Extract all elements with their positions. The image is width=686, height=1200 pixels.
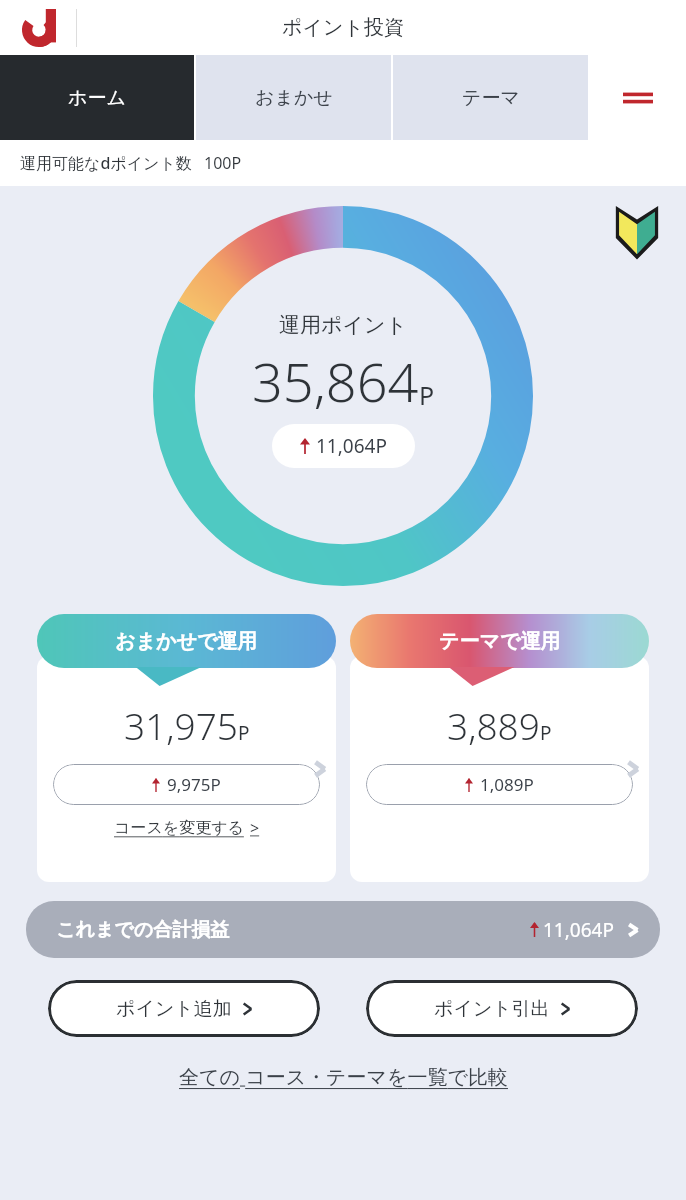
staticText: 31,975 bbox=[124, 700, 238, 750]
staticText: 3,889 bbox=[447, 700, 540, 750]
button[interactable]: 3,889 bbox=[350, 656, 649, 882]
staticText: テーマ bbox=[462, 86, 520, 110]
button[interactable]: ホーム bbox=[0, 55, 194, 140]
staticText: 9,975P bbox=[167, 773, 221, 796]
staticText: コースを変更する bbox=[114, 818, 244, 838]
staticText: ポイント追加 bbox=[116, 997, 232, 1021]
button[interactable]: コースを変更する bbox=[114, 817, 260, 839]
button[interactable]: メニュー bbox=[590, 55, 686, 140]
button[interactable]: テーマ bbox=[393, 55, 588, 140]
button[interactable]: ポイント引出 bbox=[366, 980, 638, 1037]
staticText: これまでの合計損益 bbox=[56, 918, 230, 942]
staticText: 11,064P bbox=[316, 433, 387, 459]
staticText: 運用可能なdポイント数 bbox=[20, 152, 192, 174]
staticText: 100P bbox=[204, 152, 242, 174]
other: docomo logo bbox=[22, 9, 56, 47]
button[interactable]: 全ての コース・テーマを一覧で比較 bbox=[0, 1063, 686, 1090]
staticText: 35,864 bbox=[252, 344, 419, 418]
staticText: 11,064P bbox=[543, 917, 614, 943]
staticText: ポイント投資 bbox=[282, 15, 404, 40]
staticText: ポイント引出 bbox=[434, 997, 550, 1021]
staticText: テーマで運用 bbox=[439, 629, 561, 654]
button[interactable]: 31,975 bbox=[37, 656, 336, 882]
button[interactable]: これまでの合計損益 bbox=[26, 901, 660, 958]
staticText: 運用ポイント bbox=[279, 312, 407, 338]
staticText: 1,089P bbox=[480, 773, 534, 796]
button[interactable]: おまかせ bbox=[196, 55, 391, 140]
staticText: P bbox=[419, 378, 435, 412]
staticText: 全ての コース・テーマを一覧で比較 bbox=[179, 1063, 508, 1090]
staticText: ホーム bbox=[68, 86, 126, 110]
staticText: おまかせ bbox=[255, 86, 333, 110]
staticText: > bbox=[250, 817, 260, 839]
staticText: P bbox=[540, 720, 552, 746]
staticText: おまかせで運用 bbox=[115, 629, 258, 654]
staticText: P bbox=[238, 720, 250, 746]
button[interactable]: ポイント追加 bbox=[48, 980, 320, 1037]
